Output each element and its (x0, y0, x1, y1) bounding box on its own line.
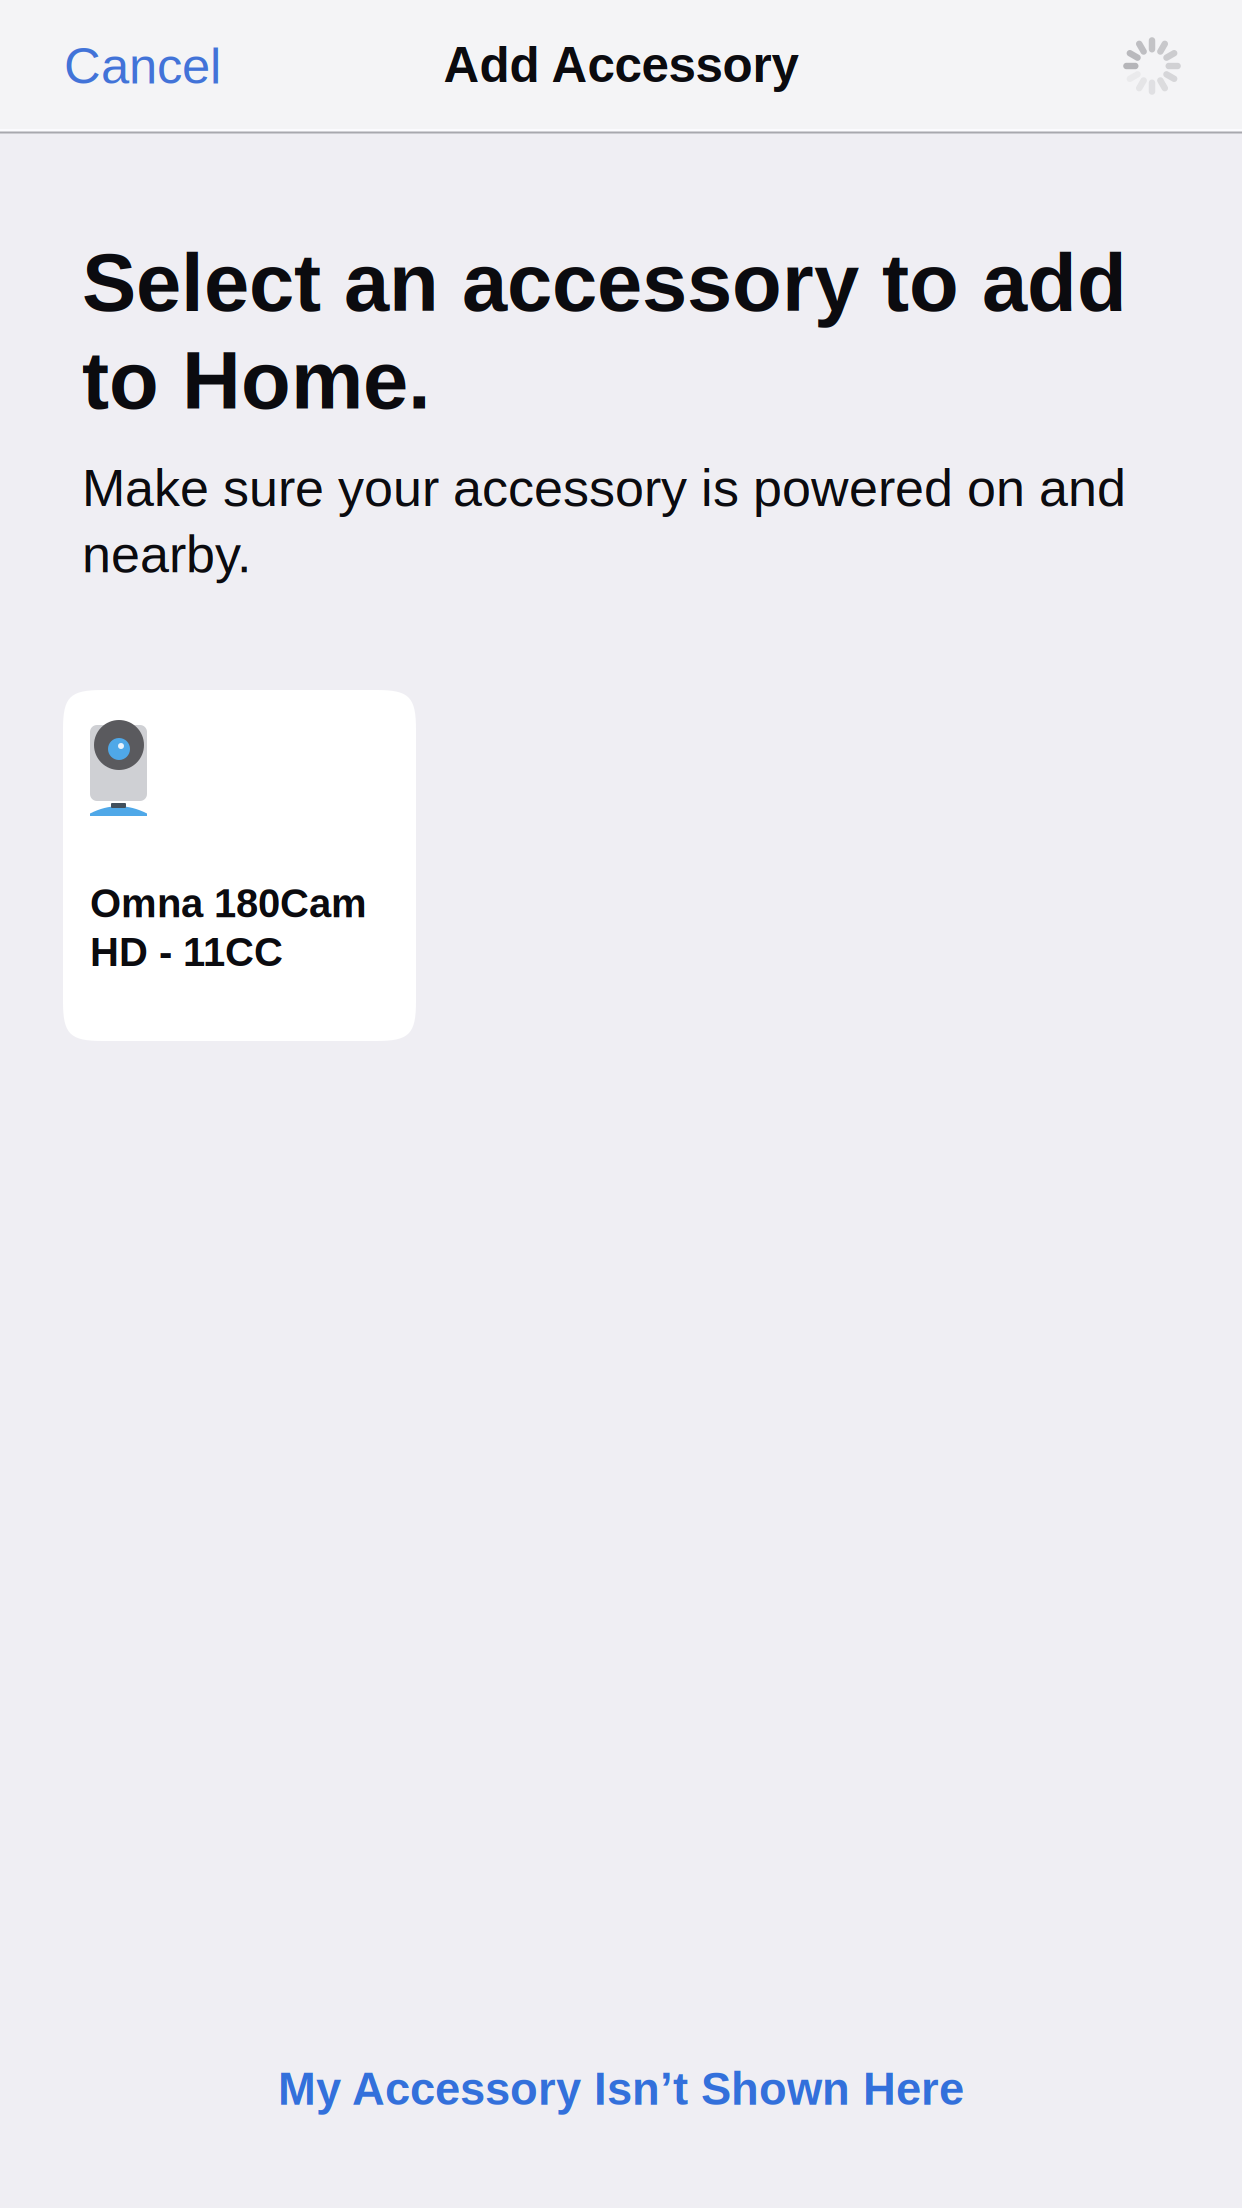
button[interactable]: Searching for accessories (1093, 7, 1211, 125)
staticText: Make sure your accessory is powered on a… (82, 459, 1126, 517)
button[interactable]: Cancel (64, 7, 228, 125)
staticText: Add Accessory (443, 37, 798, 92)
staticText: Cancel (64, 38, 221, 94)
button[interactable]: My Accessory Isn’t Shown Here (0, 2041, 1242, 2137)
staticText: HD - 11CC (90, 930, 283, 974)
staticText: to Home. (82, 335, 431, 426)
button[interactable]: Omna 180Cam (63, 690, 416, 1041)
staticText: My Accessory Isn’t Shown Here (278, 2064, 964, 2114)
staticText: Select an accessory to add (82, 237, 1127, 328)
staticText: nearby. (82, 525, 251, 583)
staticText: Omna 180Cam (90, 881, 367, 926)
